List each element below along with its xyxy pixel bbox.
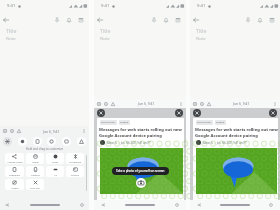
staticText: TECHNOLOGY xyxy=(197,121,212,124)
staticText: Clipboard xyxy=(9,173,20,176)
staticText: Torrenting xyxy=(69,160,81,163)
staticText: 9:41 xyxy=(7,3,16,9)
staticText: Messages for web starts rolling out new … xyxy=(99,127,182,138)
button[interactable]: Clipboard xyxy=(5,166,24,177)
button[interactable]: Pomelo xyxy=(26,166,44,177)
staticText: Note xyxy=(196,36,206,42)
staticText: Gmail xyxy=(32,160,39,163)
button[interactable]: Close xyxy=(193,109,201,117)
button[interactable]: Photos xyxy=(66,166,84,177)
button[interactable]: Archive xyxy=(172,14,183,25)
button[interactable]: App 1 xyxy=(2,136,13,147)
staticText: 9:41 xyxy=(101,3,110,9)
staticText: MOBILE xyxy=(216,121,225,124)
staticText: Title xyxy=(196,27,207,34)
button[interactable]: App 3 xyxy=(32,136,43,147)
staticText: Messages for web starts rolling out new … xyxy=(195,127,278,138)
button[interactable]: All xyxy=(46,166,64,177)
button[interactable]: Reminder xyxy=(160,14,171,25)
button[interactable]: Reminder xyxy=(63,14,74,25)
button[interactable]: Archive xyxy=(266,14,277,25)
staticText: Hold and drag to customize xyxy=(0,147,89,151)
button[interactable]: App 5 xyxy=(61,136,72,147)
staticText: Nearby Share xyxy=(7,160,23,163)
button[interactable]: App 2 xyxy=(17,136,28,147)
staticText: Jun 6, 9:41 xyxy=(233,101,250,106)
staticText: MOBILE xyxy=(120,121,129,124)
button[interactable]: Solo Net xyxy=(26,179,44,190)
staticText: Take a photo of yourself on screen xyxy=(116,169,165,173)
staticText: Planet xyxy=(11,186,19,189)
button[interactable]: Back xyxy=(0,14,11,25)
button[interactable]: Take photo xyxy=(136,178,146,188)
staticText: Solo Net xyxy=(30,186,40,189)
button[interactable]: Torrenting xyxy=(66,153,84,164)
button[interactable]: Pin xyxy=(242,14,253,25)
staticText: Abner Li - Jun. 6th 2021 9:41 am PT xyxy=(107,141,151,145)
staticText: Title xyxy=(100,27,111,34)
button[interactable]: Planet xyxy=(5,179,24,190)
button[interactable]: App 6 xyxy=(76,136,87,147)
button[interactable]: Dismiss xyxy=(269,109,277,117)
staticText: Jun 6, 9:41 xyxy=(43,129,60,134)
button[interactable]: Dismiss xyxy=(175,109,183,117)
staticText: Note xyxy=(100,36,110,42)
button[interactable]: Back xyxy=(94,14,105,25)
staticText: Drive xyxy=(52,160,58,163)
staticText: Note xyxy=(6,36,16,42)
button[interactable]: Nearby Share xyxy=(5,153,24,164)
staticText: Pomelo xyxy=(31,173,40,176)
staticText: Photos xyxy=(71,173,79,176)
staticText: Title xyxy=(6,27,17,34)
button[interactable]: Archive xyxy=(75,14,86,25)
button[interactable]: Pin xyxy=(148,14,159,25)
button[interactable]: Reminder xyxy=(254,14,265,25)
button[interactable]: Pin xyxy=(51,14,62,25)
button[interactable]: Close xyxy=(97,109,105,117)
staticText: Jun 6, 9:41 xyxy=(138,101,155,106)
button[interactable]: Gmail xyxy=(26,153,44,164)
button[interactable]: Drive xyxy=(46,153,64,164)
staticText: 9:41 xyxy=(197,3,206,9)
staticText: Abner Li - Jun. 6th 2021 9:41 am PT xyxy=(203,141,247,145)
button[interactable]: App 4 xyxy=(46,136,57,147)
staticText: TECHNOLOGY xyxy=(101,121,116,124)
staticText: All xyxy=(54,173,57,176)
button[interactable]: Back xyxy=(190,14,201,25)
